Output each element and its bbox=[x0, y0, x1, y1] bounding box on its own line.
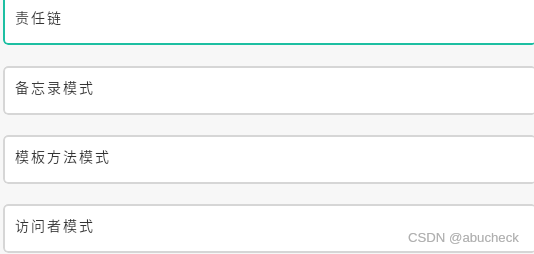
staticText: CSDN @abucheck bbox=[408, 230, 519, 245]
staticText: 备忘录模式 bbox=[15, 77, 95, 97]
button[interactable]: 责任链 bbox=[3, 0, 534, 45]
button[interactable]: 模板方法模式 bbox=[3, 135, 534, 184]
staticText: 责任链 bbox=[15, 7, 63, 27]
staticText: 访问者模式 bbox=[15, 215, 95, 235]
button[interactable]: 备忘录模式 bbox=[3, 66, 534, 115]
button[interactable]: 访问者模式 bbox=[3, 204, 534, 253]
staticText: 模板方法模式 bbox=[15, 146, 111, 166]
